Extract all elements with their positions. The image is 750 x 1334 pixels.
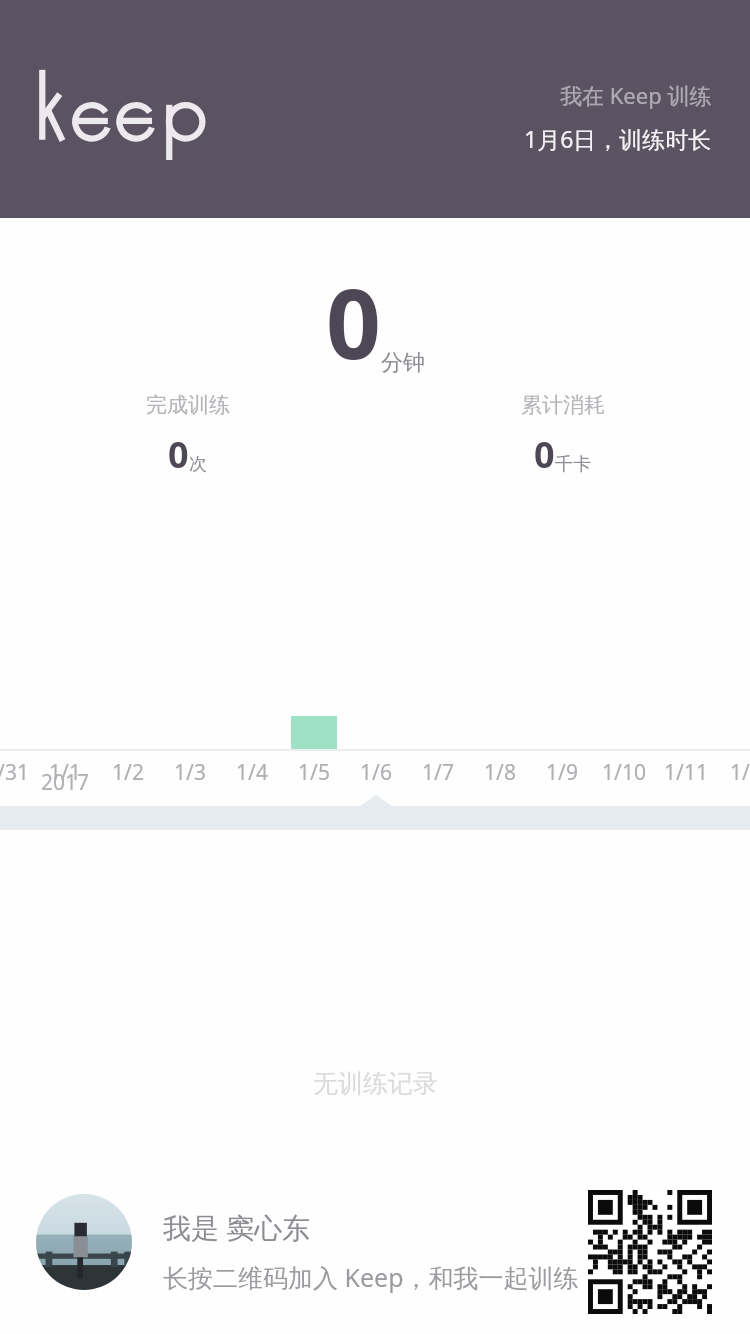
staticText: 完成训练 [146, 392, 230, 418]
staticText: 分钟 [381, 349, 425, 377]
button[interactable]: 1/7 [398, 758, 478, 787]
staticText: 次 [189, 453, 207, 476]
staticText: 0 [326, 256, 381, 387]
button[interactable]: Keep logo [34, 68, 218, 160]
button[interactable]: 1/1 [706, 758, 750, 787]
button[interactable]: 累计消耗 [375, 390, 750, 481]
button[interactable]: Profile photo [36, 1194, 132, 1290]
button[interactable]: 1/4 [212, 758, 292, 787]
button[interactable]: 1/5 [274, 758, 354, 787]
button[interactable]: QR code [588, 1190, 712, 1314]
staticText: 我在 Keep 训练 [560, 80, 712, 110]
button[interactable]: 我是 窦心东 [163, 1208, 579, 1294]
staticText: 1/1 [706, 758, 750, 787]
staticText: 0 [534, 430, 555, 479]
staticText: 1/8 [460, 758, 540, 787]
button[interactable]: 1/10 [584, 758, 664, 787]
button[interactable]: 1/11 [646, 758, 726, 787]
staticText: 1/11 [646, 758, 726, 787]
staticText: 1月6日，训练时长 [524, 123, 712, 154]
staticText: 1/9 [522, 758, 602, 787]
staticText: 1/2 [88, 758, 168, 787]
staticText: 2017 [25, 768, 105, 797]
button[interactable]: /31 [0, 758, 53, 787]
staticText: 累计消耗 [521, 392, 605, 418]
staticText: 1/6 [336, 758, 416, 787]
button[interactable]: 1/1 [25, 758, 105, 787]
staticText: 长按二维码加入 Keep，和我一起训练 [163, 1260, 579, 1294]
button[interactable]: 完成训练 [0, 390, 375, 481]
staticText: /31 [0, 758, 53, 787]
staticText: 1/1 [25, 758, 105, 787]
button[interactable]: 1/6 [336, 758, 416, 787]
staticText: 1/3 [150, 758, 230, 787]
button[interactable]: 1/9 [522, 758, 602, 787]
staticText: 我是 窦心东 [163, 1208, 311, 1246]
staticText: 1/4 [212, 758, 292, 787]
button[interactable]: 1/8 [460, 758, 540, 787]
staticText: 1/7 [398, 758, 478, 787]
staticText: 无训练记录 [313, 1068, 438, 1099]
staticText: 千卡 [555, 453, 591, 476]
staticText: 0 [168, 430, 189, 479]
staticText: 1/5 [274, 758, 354, 787]
staticText: 1/10 [584, 758, 664, 787]
button[interactable]: 1/2 [88, 758, 168, 787]
button[interactable]: 1/3 [150, 758, 230, 787]
